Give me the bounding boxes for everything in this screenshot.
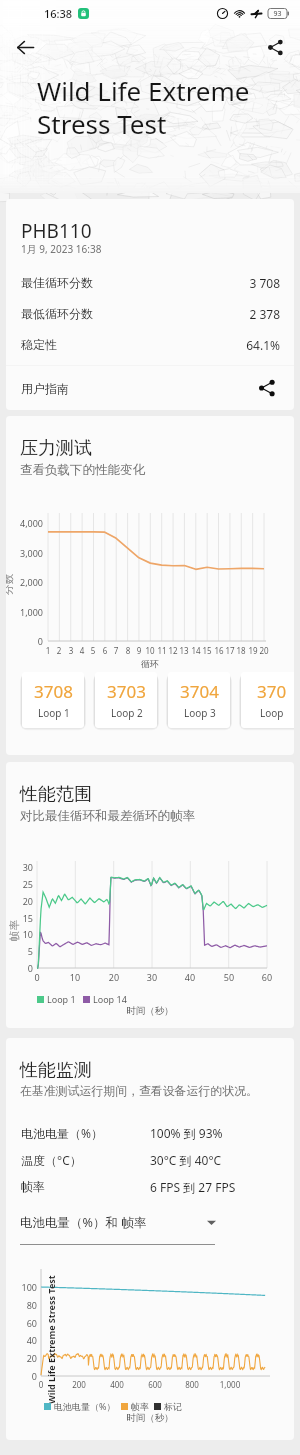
staticText: 800 xyxy=(177,1379,207,1390)
staticText: 50 xyxy=(219,971,239,983)
staticText: 3,000 xyxy=(7,547,43,559)
staticText: 0 xyxy=(11,1370,37,1382)
staticText: Wild Life Extreme Stress Test xyxy=(45,1264,57,1404)
staticText: Loop 14 xyxy=(93,993,127,1005)
staticText: Loop xyxy=(260,706,284,720)
staticText: 25 xyxy=(13,878,33,890)
staticText: 1 xyxy=(41,645,55,656)
staticText: PHB110 xyxy=(21,218,92,244)
staticText: 20 xyxy=(13,895,33,907)
button[interactable]: 3704 xyxy=(168,672,230,728)
staticText: 2 xyxy=(52,645,66,656)
staticText: 60 xyxy=(11,1317,37,1329)
staticText: 30°C 到 40°C xyxy=(150,1152,222,1168)
staticText: 30 xyxy=(13,861,33,873)
staticText: 帧率 xyxy=(8,920,21,941)
staticText: 4 xyxy=(75,645,89,656)
staticText: 600 xyxy=(140,1379,170,1390)
staticText: 标记 xyxy=(164,1401,182,1412)
staticText: 93 xyxy=(268,9,287,19)
staticText: 8 xyxy=(121,645,135,656)
button[interactable]: Back xyxy=(8,30,42,64)
staticText: 电池电量（%）和 帧率 xyxy=(20,1214,147,1231)
staticText: 对比最佳循环和最差循环的帧率 xyxy=(20,808,195,824)
staticText: 1,000 xyxy=(7,606,43,618)
staticText: 1,000 xyxy=(215,1379,245,1390)
staticText: 9 xyxy=(132,645,146,656)
button[interactable]: Share xyxy=(258,30,292,64)
staticText: 40 xyxy=(11,1334,37,1346)
staticText: 14 xyxy=(189,645,203,656)
staticText: 最佳循环分数 xyxy=(21,275,93,290)
staticText: 4,000 xyxy=(7,517,43,529)
staticText: 17 xyxy=(223,645,237,656)
staticText: 0 xyxy=(7,635,43,647)
button[interactable]: 电池电量（%）和 帧率 xyxy=(20,1206,216,1238)
staticText: 帧率 xyxy=(131,1401,149,1412)
staticText: 400 xyxy=(102,1379,132,1390)
staticText: 5 xyxy=(86,645,100,656)
staticText: 16 xyxy=(212,645,226,656)
staticText: Loop 1 xyxy=(38,706,70,720)
button[interactable]: 3708 xyxy=(22,672,84,728)
staticText: 1月 9, 2023 16:38 xyxy=(21,242,102,256)
button[interactable]: 用户指南 xyxy=(6,366,294,410)
staticText: 查看负载下的性能变化 xyxy=(20,462,145,478)
staticText: 13 xyxy=(177,645,191,656)
staticText: 18 xyxy=(234,645,248,656)
staticText: 20 xyxy=(257,645,271,656)
staticText: 性能监测 xyxy=(20,1059,92,1082)
staticText: 3 708 xyxy=(6,275,280,291)
staticText: 15 xyxy=(13,912,33,924)
staticText: Loop 2 xyxy=(111,706,143,720)
staticText: Wild Life Extreme Stress Test xyxy=(37,73,250,142)
staticText: 3 xyxy=(64,645,78,656)
staticText: 时间（秒） xyxy=(6,1412,294,1424)
staticText: Loop 1 xyxy=(47,993,76,1005)
staticText: 5 xyxy=(13,945,33,957)
staticText: 3704 xyxy=(180,680,219,703)
button[interactable]: 3703 xyxy=(95,672,157,728)
staticText: 循环 xyxy=(6,658,294,669)
staticText: 性能范围 xyxy=(20,783,92,806)
staticText: 16:38 xyxy=(44,6,73,21)
staticText: 64.1% xyxy=(6,337,280,353)
staticText: 12 xyxy=(166,645,180,656)
staticText: 6 FPS 到 27 FPS xyxy=(150,1179,236,1195)
staticText: 2 378 xyxy=(6,306,280,322)
staticText: 11 xyxy=(155,645,169,656)
staticText: 稳定性 xyxy=(21,337,57,352)
staticText: 在基准测试运行期间，查看设备运行的状况。 xyxy=(20,1084,258,1099)
staticText: 3708 xyxy=(34,680,73,703)
staticText: 电池电量（%） xyxy=(21,1125,103,1141)
staticText: 10 xyxy=(65,971,85,983)
staticText: 帧率 xyxy=(21,1179,45,1194)
staticText: 压力测试 xyxy=(20,437,92,460)
staticText: 7 xyxy=(109,645,123,656)
staticText: Loop 3 xyxy=(184,706,216,720)
staticText: 0 xyxy=(27,971,47,983)
staticText: 20 xyxy=(104,971,124,983)
staticText: 最低循环分数 xyxy=(21,306,93,321)
button[interactable]: 370 xyxy=(241,672,294,728)
staticText: 20 xyxy=(11,1352,37,1364)
staticText: 电池电量（%） xyxy=(54,1400,116,1412)
staticText: 时间（秒） xyxy=(6,1005,294,1017)
staticText: 40 xyxy=(180,971,200,983)
staticText: 15 xyxy=(200,645,214,656)
staticText: 100 xyxy=(11,1281,37,1293)
staticText: 200 xyxy=(64,1379,94,1390)
staticText: 80 xyxy=(11,1299,37,1311)
staticText: 10 xyxy=(13,928,33,940)
staticText: 6 xyxy=(98,645,112,656)
staticText: 100% 到 93% xyxy=(150,1125,223,1141)
staticText: 2,000 xyxy=(7,576,43,588)
staticText: 10 xyxy=(143,645,157,656)
staticText: 370 xyxy=(257,680,287,703)
staticText: 30 xyxy=(142,971,162,983)
staticText: 温度（°C） xyxy=(21,1152,82,1168)
staticText: 用户指南 xyxy=(21,381,69,396)
staticText: 分数 xyxy=(6,574,15,595)
staticText: 3703 xyxy=(107,680,146,703)
staticText: 0 xyxy=(13,962,33,974)
